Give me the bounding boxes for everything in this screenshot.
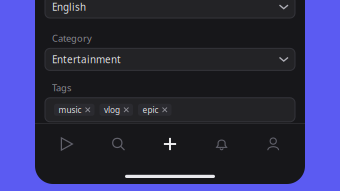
staticText: epic bbox=[142, 104, 158, 115]
button[interactable]: epic bbox=[138, 104, 171, 116]
staticText: music bbox=[58, 104, 81, 115]
button[interactable]: music bbox=[54, 104, 94, 116]
button[interactable]: Entertainment bbox=[45, 48, 295, 70]
staticText: English bbox=[52, 0, 86, 14]
button[interactable]: vlog bbox=[99, 104, 133, 116]
button[interactable]: Create bbox=[144, 131, 196, 157]
button[interactable]: Notifications bbox=[196, 131, 247, 157]
staticText: vlog bbox=[104, 104, 120, 115]
staticText: Tags bbox=[52, 81, 71, 94]
staticText: Entertainment bbox=[52, 53, 121, 66]
button[interactable]: Search bbox=[93, 131, 144, 157]
staticText: Category bbox=[52, 32, 92, 44]
button[interactable]: English bbox=[45, 0, 295, 18]
button[interactable]: Profile bbox=[247, 131, 299, 157]
button[interactable]: Home bbox=[41, 131, 93, 157]
